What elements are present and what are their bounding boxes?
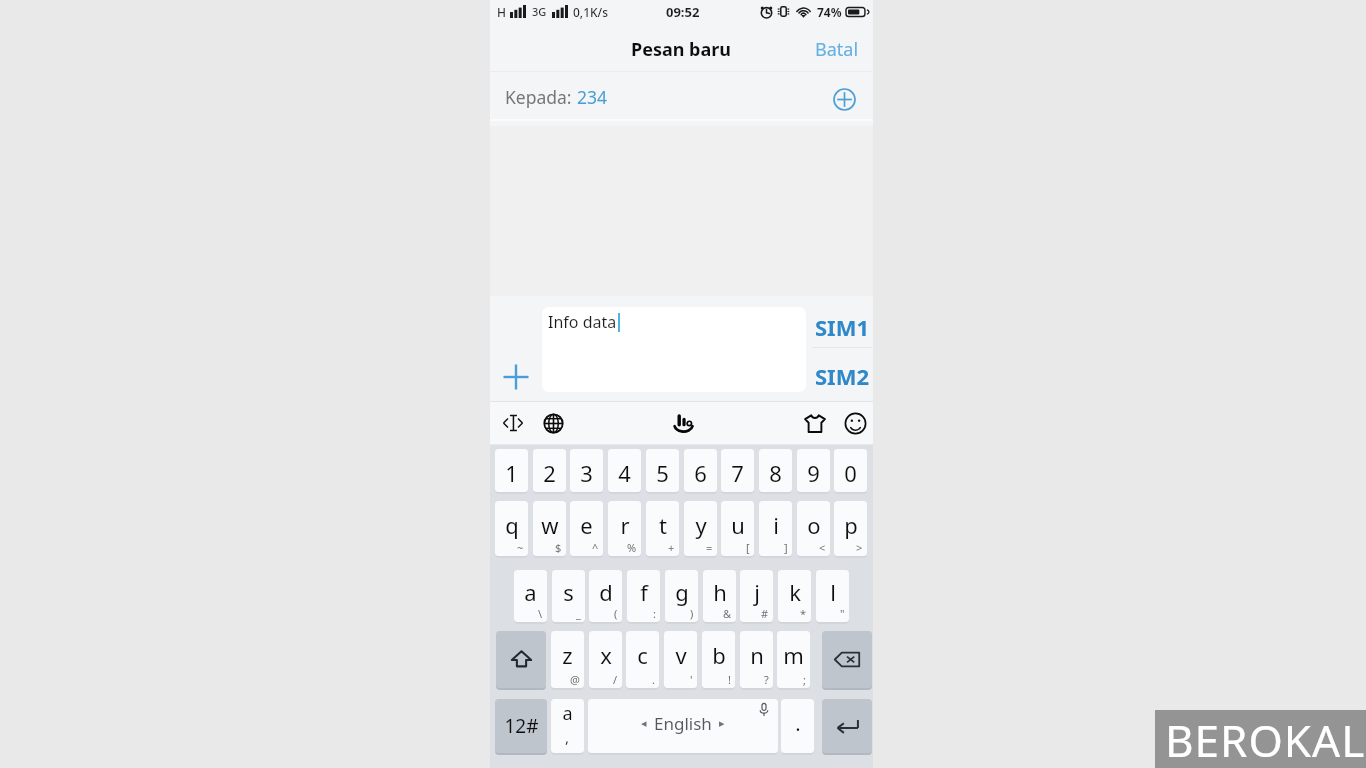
button[interactable]: w [533,501,566,556]
staticText: 6 [694,458,707,488]
button[interactable]: Batal [815,37,859,62]
button[interactable]: Add attachment [503,364,529,390]
button[interactable]: j [740,570,773,622]
button[interactable]: v [664,631,697,688]
button[interactable]: Enter [822,699,872,753]
button[interactable]: k [778,570,811,622]
staticText: 5 [656,458,669,488]
button[interactable]: z [551,631,584,688]
staticText: 0,1K/s [573,4,609,20]
staticText: SIM2 [815,361,870,391]
staticText: g [675,577,689,607]
button[interactable]: b [702,631,735,688]
button[interactable]: Shift [496,631,546,688]
staticText: + [668,540,675,555]
staticText: y [695,510,707,540]
button[interactable]: r [608,501,641,556]
button[interactable]: Backspace [822,631,872,688]
button[interactable]: a [551,699,584,753]
button[interactable]: 1 [495,449,528,492]
button[interactable]: . [781,699,814,753]
staticText: 1 [505,458,518,488]
staticText: English [654,712,712,735]
staticText: / [613,672,618,687]
button[interactable]: c [626,631,659,688]
button[interactable]: 0 [834,449,867,492]
button[interactable]: 3 [570,449,603,492]
staticText: q [505,510,519,540]
button[interactable]: e [570,501,603,556]
button[interactable]: y [684,501,717,556]
staticText: 7 [731,458,744,488]
staticText: Batal [815,37,859,62]
staticText: ( [614,606,618,621]
button[interactable]: s [552,570,585,622]
staticText: l [830,577,836,607]
button[interactable]: 7 [721,449,754,492]
staticText: ^ [592,540,599,555]
button[interactable]: 4 [608,449,641,492]
staticText: ▸ [719,717,725,730]
staticText: c [637,640,648,670]
button[interactable]: 8 [759,449,792,492]
staticText: 234 [577,85,608,109]
button[interactable]: 9 [797,449,830,492]
button[interactable]: Handwriting [667,406,701,440]
staticText: n [750,640,764,670]
staticText: Info data [548,311,617,333]
staticText: j [754,577,760,607]
staticText: ) [690,606,694,621]
staticText: SIM1 [815,312,870,342]
staticText: z [562,640,573,670]
staticText: s [563,577,574,607]
button[interactable]: Space [588,699,778,753]
staticText: > [856,540,863,555]
staticText: , [565,727,570,747]
button[interactable]: SIM2 [812,352,872,399]
staticText: Kepada: [505,85,577,109]
staticText: 3 [580,458,593,488]
staticText: _ [576,606,581,621]
button[interactable]: Emoji [838,406,872,440]
staticText: a [524,577,537,607]
button[interactable]: o [797,501,830,556]
button[interactable]: Move cursor [496,406,530,440]
button[interactable]: Add recipient [829,84,859,114]
button[interactable]: l [816,570,849,622]
button[interactable]: 2 [533,449,566,492]
button[interactable]: i [759,501,792,556]
staticText: e [580,510,593,540]
button[interactable]: SIM1 [812,303,872,350]
button[interactable]: u [721,501,754,556]
staticText: % [627,540,637,555]
button[interactable]: Change language [536,406,570,440]
staticText: $ [555,540,562,555]
button[interactable]: g [665,570,698,622]
staticText: i [773,510,779,540]
button[interactable]: d [589,570,622,622]
staticText: p [844,510,858,540]
button[interactable]: 5 [646,449,679,492]
staticText: ! [728,672,731,687]
staticText: a [562,701,573,726]
staticText: * [800,606,807,621]
button[interactable]: h [703,570,736,622]
button[interactable]: 12# [495,699,547,753]
staticText: & [723,606,732,621]
button[interactable]: p [834,501,867,556]
staticText: v [675,640,687,670]
button[interactable]: m [777,631,810,688]
staticText: 0 [844,458,857,488]
button[interactable]: n [740,631,773,688]
button[interactable]: Keyboard theme [798,406,832,440]
button[interactable]: q [495,501,528,556]
button[interactable]: x [589,631,622,688]
button[interactable]: t [646,501,679,556]
button[interactable]: f [627,570,660,622]
button[interactable]: Info data [542,307,806,392]
staticText: : [653,606,656,621]
button[interactable]: a [514,570,547,622]
staticText: f [640,577,648,607]
button[interactable]: 6 [684,449,717,492]
staticText: ◂ [641,717,647,730]
